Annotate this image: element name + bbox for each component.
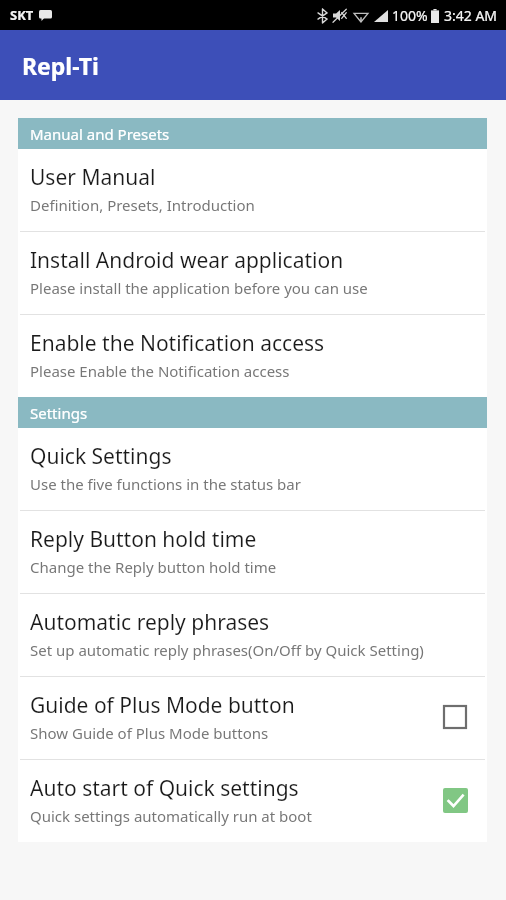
staticText: Repl-Ti: [22, 50, 99, 81]
staticText: Use the five functions in the status bar: [30, 474, 301, 494]
staticText: Please Enable the Notification access: [30, 361, 290, 381]
button[interactable]: User Manual: [18, 149, 487, 231]
staticText: 3:42 AM: [444, 6, 498, 25]
staticText: Definition, Presets, Introduction: [30, 195, 255, 215]
staticText: Quick Settings: [30, 442, 172, 471]
button[interactable]: Automatic reply phrases: [18, 594, 487, 676]
staticText: Automatic reply phrases: [30, 608, 270, 637]
staticText: Install Android wear application: [30, 246, 344, 275]
staticText: Reply Button hold time: [30, 525, 257, 554]
button[interactable]: Auto start of Quick settings: [18, 760, 487, 842]
button[interactable]: Install Android wear application: [18, 232, 487, 314]
staticText: 100%: [392, 6, 428, 25]
staticText: Change the Reply button hold time: [30, 557, 277, 577]
button[interactable]: Auto start of Quick settings: [435, 780, 475, 820]
button[interactable]: Enable the Notification access: [18, 315, 487, 397]
staticText: Please install the application before yo…: [30, 278, 368, 298]
staticText: Set up automatic reply phrases(On/Off by…: [30, 640, 424, 660]
staticText: Manual and Presets: [30, 124, 170, 144]
staticText: Quick settings automatically run at boot: [30, 806, 312, 826]
staticText: Guide of Plus Mode button: [30, 691, 295, 720]
button[interactable]: Quick Settings: [18, 428, 487, 510]
button[interactable]: Guide of Plus Mode button: [18, 677, 487, 759]
staticText: SKT: [10, 6, 34, 24]
staticText: User Manual: [30, 163, 156, 192]
staticText: Auto start of Quick settings: [30, 774, 299, 803]
staticText: Show Guide of Plus Mode buttons: [30, 723, 269, 743]
button[interactable]: Reply Button hold time: [18, 511, 487, 593]
staticText: Settings: [30, 403, 88, 423]
staticText: Enable the Notification access: [30, 329, 325, 358]
button[interactable]: Guide of Plus Mode button: [435, 697, 475, 737]
